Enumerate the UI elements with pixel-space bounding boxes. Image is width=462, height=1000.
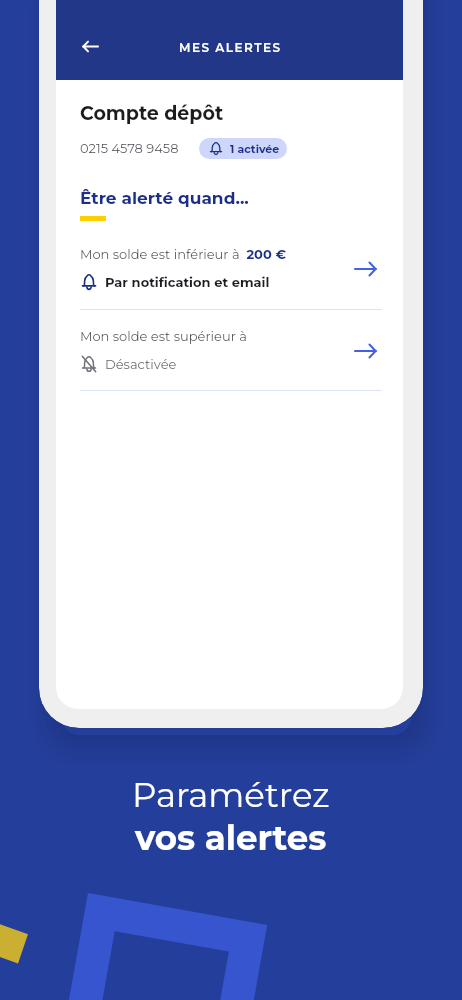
staticText: 1 activée [230, 142, 280, 155]
staticText: Paramétrez [132, 774, 330, 815]
staticText: Par notification et email [105, 274, 270, 290]
button[interactable]: 1 activée [199, 138, 287, 159]
staticText: Mon solde est inférieur à 200 € [80, 246, 286, 262]
button[interactable]: Retour [76, 32, 104, 60]
staticText: Être alerté quand... [80, 188, 249, 209]
button[interactable]: Mon solde est supérieur à [80, 328, 382, 373]
staticText: 0215 4578 9458 [80, 140, 179, 156]
button[interactable]: Mon solde est inférieur à 200 € [80, 246, 382, 291]
staticText: vos alertes [135, 817, 327, 858]
staticText: MES ALERTES [179, 40, 282, 55]
staticText: Compte dépôt [80, 102, 224, 125]
staticText: Mon solde est supérieur à [80, 328, 247, 344]
staticText: Désactivée [105, 356, 177, 372]
